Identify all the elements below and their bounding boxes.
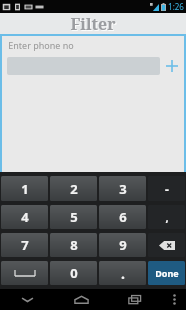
staticText: 5	[70, 208, 78, 226]
button[interactable]: -	[148, 176, 185, 201]
staticText: Done	[155, 267, 179, 279]
button[interactable]: Hide keyboard	[0, 289, 54, 310]
staticText: .	[121, 264, 125, 283]
staticText: 8	[70, 236, 78, 254]
button[interactable]: 7	[1, 233, 48, 257]
button[interactable]: ,	[148, 205, 185, 229]
staticText: Enter phone no	[8, 39, 74, 51]
button[interactable]: Add number	[160, 54, 184, 78]
button[interactable]: 3	[99, 176, 146, 201]
button[interactable]: 0	[50, 261, 97, 285]
staticText: 3	[119, 180, 127, 198]
button[interactable]: 9	[99, 233, 146, 257]
staticText: 6	[119, 208, 127, 226]
staticText: 2	[70, 180, 78, 198]
staticText: 0	[70, 264, 78, 282]
button[interactable]: Done	[148, 261, 185, 285]
button[interactable]: Home	[54, 289, 108, 310]
button[interactable]: 6	[99, 205, 146, 229]
staticText: 9	[119, 236, 127, 254]
button[interactable]: 2	[50, 176, 97, 201]
staticText: Filter	[70, 13, 116, 34]
staticText: -	[165, 181, 169, 197]
button[interactable]: Delete	[148, 233, 185, 257]
button[interactable]: 1	[1, 176, 48, 201]
button[interactable]: 5	[50, 205, 97, 229]
staticText: Filter	[71, 14, 117, 35]
button[interactable]: .	[99, 261, 146, 285]
staticText: 4	[21, 208, 29, 226]
button[interactable]: 4	[1, 205, 48, 229]
button[interactable]: Space	[1, 261, 48, 285]
button[interactable]: Recent apps	[108, 289, 162, 310]
staticText: 7	[21, 236, 29, 254]
staticText: ,	[165, 210, 169, 225]
staticText: 1:26	[168, 1, 184, 12]
button[interactable]: 8	[50, 233, 97, 257]
staticText: 1	[21, 180, 29, 198]
button[interactable]: More options	[162, 289, 186, 310]
